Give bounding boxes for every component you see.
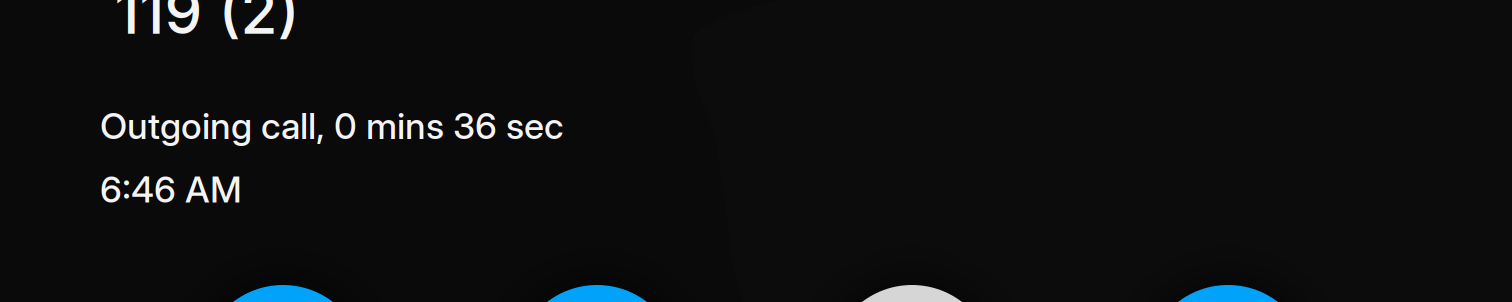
staticText: 119 (2): [114, 0, 299, 48]
staticText: Outgoing call, 0 mins 36 sec: [100, 104, 564, 148]
button[interactable]: Message: [1146, 285, 1310, 302]
button[interactable]: Mute: [830, 285, 994, 302]
button[interactable]: FaceTime: [515, 285, 679, 302]
staticText: 6:46 AM: [100, 168, 242, 211]
button[interactable]: Call: [201, 285, 365, 302]
